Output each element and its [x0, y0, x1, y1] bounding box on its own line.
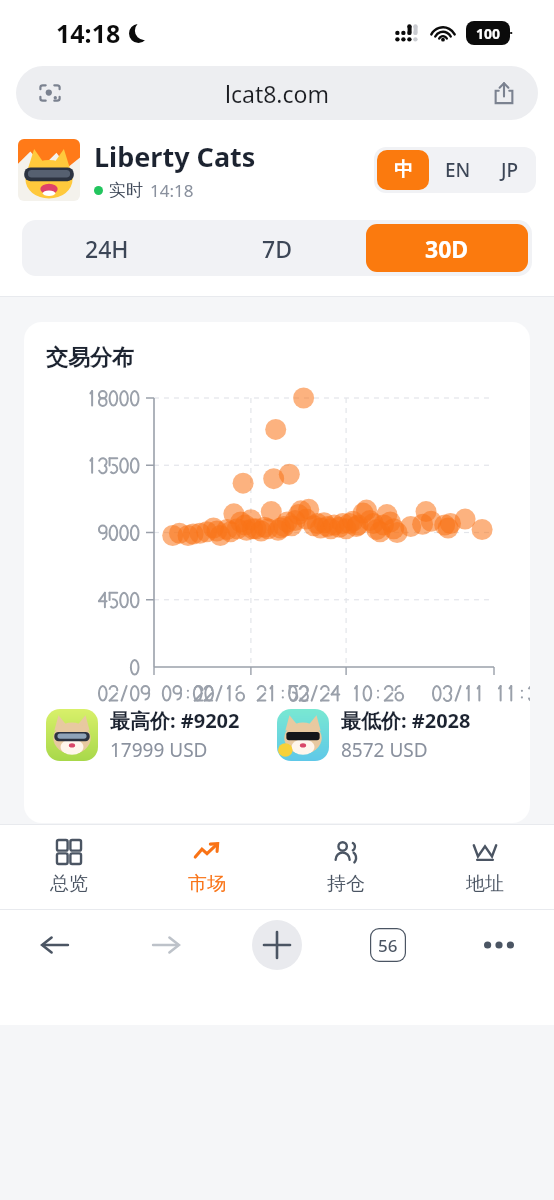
staticText: 中 — [394, 158, 413, 182]
button[interactable]: 最低价: #2028 — [277, 707, 508, 763]
staticText: JP — [501, 157, 519, 183]
button[interactable]: Tabs: 56 — [332, 910, 443, 980]
staticText: 7D — [262, 233, 292, 264]
staticText: 市场 — [188, 872, 226, 896]
staticText: 实时 — [109, 180, 143, 201]
button[interactable]: 市场 — [138, 825, 276, 909]
staticText: 17999 USD — [110, 737, 208, 763]
staticText: Liberty Cats — [94, 138, 256, 175]
button[interactable]: 总览 — [0, 825, 138, 909]
button[interactable]: 地址 — [415, 825, 554, 909]
staticText: 最高价: #9202 — [110, 707, 240, 734]
button[interactable]: 7D — [192, 220, 362, 276]
staticText: 最低价: #2028 — [341, 707, 471, 734]
button[interactable]: New tab — [221, 910, 332, 980]
button[interactable]: 30D — [366, 224, 528, 272]
button[interactable]: EN — [432, 150, 484, 190]
staticText: 地址 — [466, 872, 504, 896]
button[interactable]: 24H — [22, 220, 192, 276]
button[interactable]: 中 — [377, 150, 429, 190]
button[interactable]: 持仓 — [276, 825, 415, 909]
staticText: 24H — [85, 233, 129, 264]
staticText: 14:18 — [56, 16, 121, 50]
button[interactable]: Search with camera — [36, 79, 64, 107]
staticText: EN — [445, 157, 471, 183]
staticText: 8572 USD — [341, 737, 428, 763]
button[interactable]: Share — [490, 79, 518, 107]
staticText: 56 — [378, 934, 398, 957]
button[interactable]: Search with camera — [16, 66, 538, 120]
staticText: 持仓 — [327, 872, 365, 896]
staticText: 30D — [425, 233, 469, 264]
button[interactable]: Back — [0, 910, 110, 980]
staticText: 交易分布 — [46, 344, 134, 372]
staticText: 总览 — [50, 872, 88, 896]
button[interactable]: Forward — [110, 910, 221, 980]
button[interactable]: JP — [484, 150, 536, 190]
staticText: 14:18 — [150, 179, 194, 202]
staticText: lcat8.com — [225, 78, 329, 109]
button[interactable]: More options — [443, 910, 554, 980]
button[interactable]: 最高价: #9202 — [46, 707, 277, 763]
staticText: 100 — [476, 24, 501, 43]
